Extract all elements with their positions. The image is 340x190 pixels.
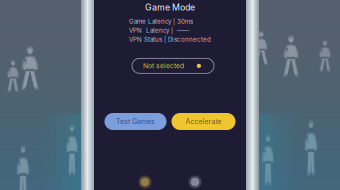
button[interactable]: Profile	[170, 172, 220, 190]
staticText: Accelerate	[185, 117, 221, 126]
button[interactable]: Games	[120, 172, 170, 190]
staticText: Not selected	[143, 62, 184, 70]
staticText: Test Games	[116, 117, 155, 126]
button[interactable]: Not selected	[132, 58, 214, 73]
staticText: Game Mode	[145, 2, 195, 13]
staticText: VPN Status | Disconnected	[129, 36, 211, 43]
staticText: Game Latency | 30ms	[129, 18, 193, 25]
button[interactable]: Test Games	[104, 113, 166, 130]
staticText: VPN Latency | ——	[129, 27, 189, 34]
button[interactable]: Accelerate	[171, 113, 235, 130]
